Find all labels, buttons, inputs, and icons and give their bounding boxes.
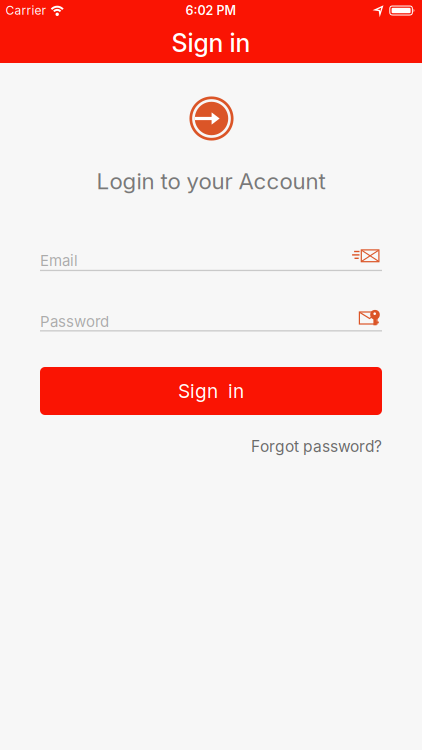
staticText: Login to your Account <box>96 167 325 194</box>
staticText: Email <box>40 251 78 269</box>
staticText: Carrier <box>5 3 46 18</box>
staticText: Password <box>40 312 109 330</box>
staticText: Forgot password? <box>251 437 382 456</box>
button[interactable]: Password <box>40 310 382 333</box>
button[interactable]: Forgot password? <box>251 437 382 456</box>
staticText: Sign in <box>178 379 244 402</box>
button[interactable]: Email <box>40 249 382 272</box>
staticText: Sign in <box>171 28 250 58</box>
button[interactable]: Sign in <box>40 367 382 415</box>
staticText: 6:02 PM <box>185 3 236 18</box>
